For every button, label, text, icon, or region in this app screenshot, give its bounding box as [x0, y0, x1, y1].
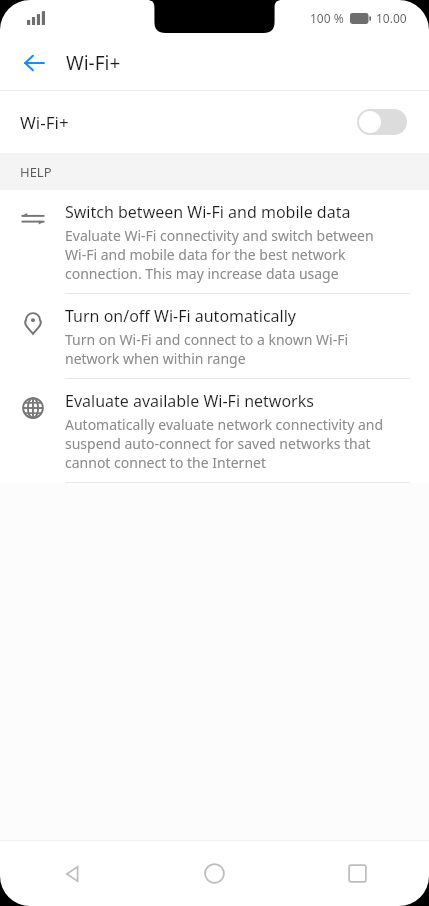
other: Globe — [20, 395, 46, 421]
button[interactable]: Wi-Fi+ toggle, off — [357, 109, 407, 135]
staticText: network when within range — [65, 349, 246, 368]
staticText: cannot connect to the Internet — [65, 453, 266, 472]
button[interactable]: Wi-Fi+ — [0, 91, 429, 153]
staticText: Wi-Fi+ — [66, 50, 121, 76]
staticText: Wi-Fi+ — [20, 111, 69, 134]
button[interactable]: Globe — [0, 379, 429, 483]
other: Switch between Wi-Fi and mobile data — [20, 206, 46, 232]
staticText: Wi-Fi and mobile data for the best netwo… — [65, 245, 346, 264]
staticText: Automatically evaluate network connectiv… — [65, 415, 384, 434]
staticText: Turn on Wi-Fi and connect to a known Wi-… — [65, 330, 349, 349]
staticText: 10.00 — [376, 10, 407, 26]
staticText: Evaluate Wi-Fi connectivity and switch b… — [65, 226, 374, 245]
staticText: HELP — [20, 163, 52, 181]
other: Location — [20, 310, 46, 336]
button[interactable]: Recent apps — [286, 841, 429, 906]
staticText: Turn on/off Wi-Fi automatically — [65, 305, 296, 327]
button[interactable]: Switch between Wi-Fi and mobile data — [0, 190, 429, 294]
staticText: Switch between Wi-Fi and mobile data — [65, 201, 351, 223]
staticText: 100 % — [310, 10, 344, 26]
button[interactable]: Back — [12, 41, 56, 85]
staticText: Evaluate available Wi-Fi networks — [65, 390, 314, 412]
staticText: connection. This may increase data usage — [65, 264, 339, 283]
staticText: suspend auto-connect for saved networks … — [65, 434, 371, 453]
button[interactable]: Home — [143, 841, 286, 906]
button[interactable]: Back — [0, 841, 143, 906]
button[interactable]: Location — [0, 294, 429, 379]
